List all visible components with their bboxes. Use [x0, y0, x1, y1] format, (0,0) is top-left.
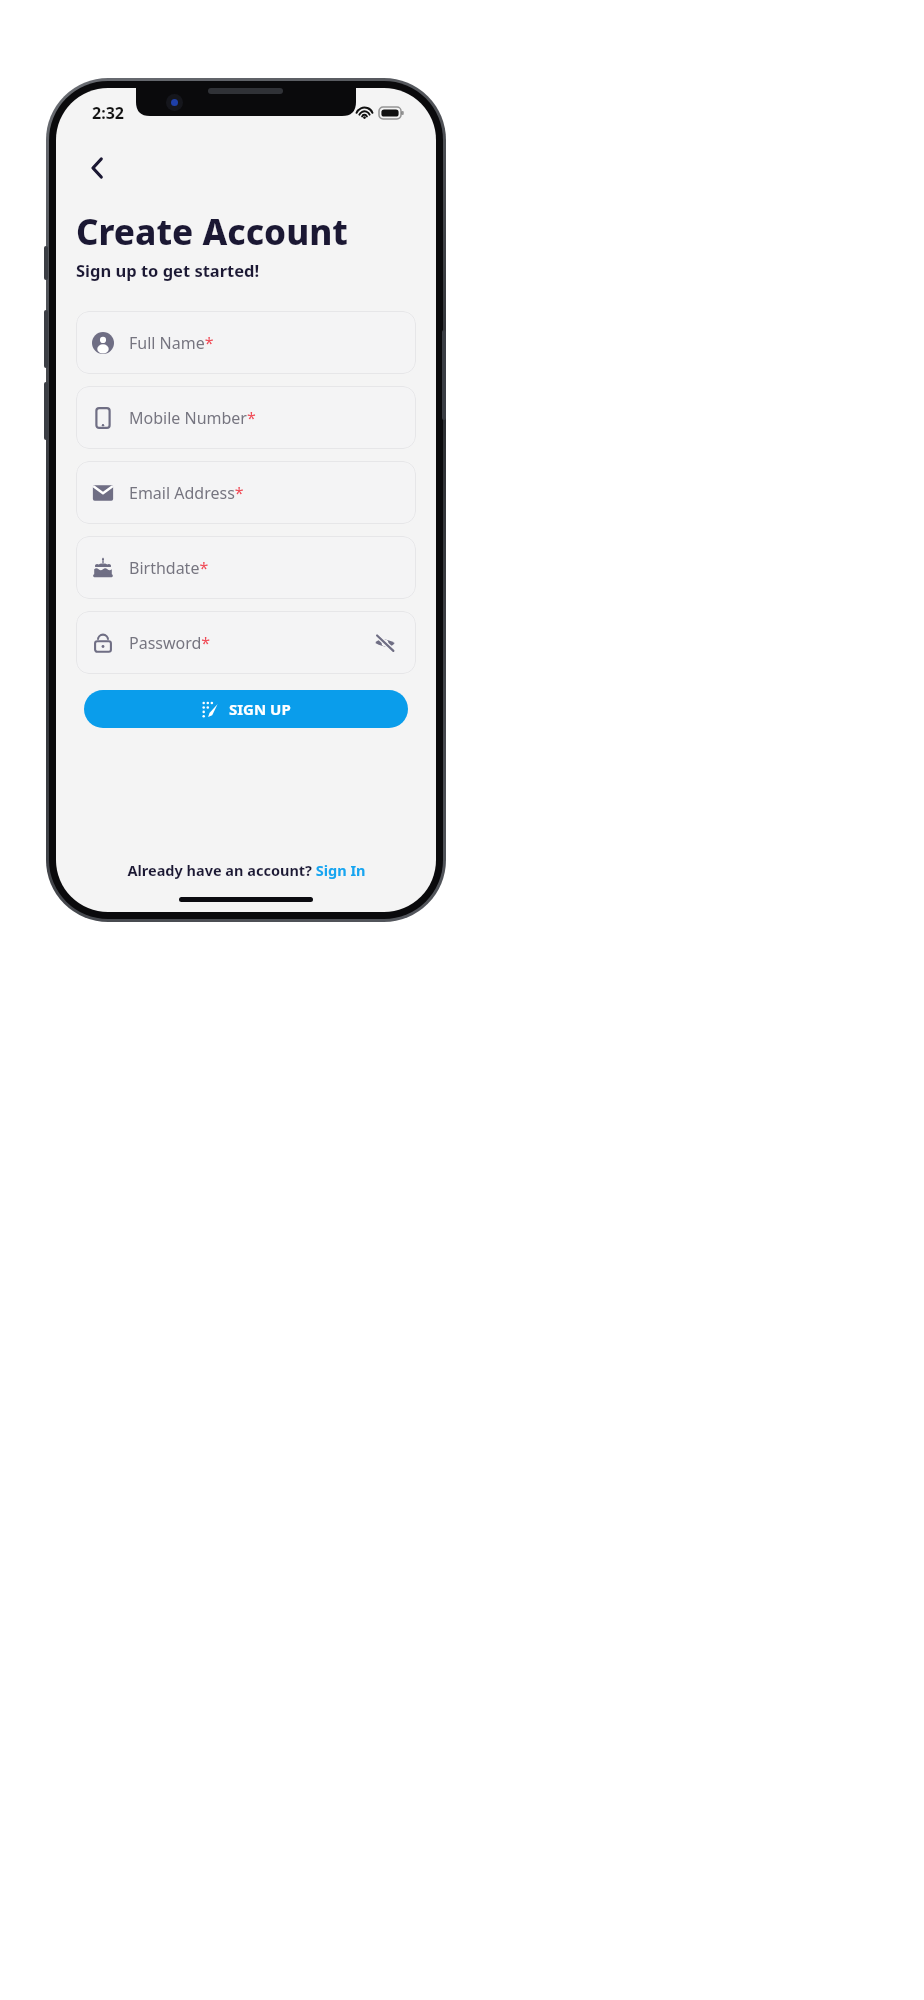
staticText: SIGN UP	[229, 699, 291, 719]
staticText: Full Name*	[129, 332, 214, 354]
button[interactable]: Email Address*	[76, 461, 416, 524]
staticText: Email Address*	[129, 482, 244, 504]
button[interactable]: Already have an account? Sign In	[56, 860, 436, 880]
staticText: Mobile Number*	[129, 407, 256, 429]
button[interactable]: Birthdate*	[76, 536, 416, 599]
staticText: 2:32	[92, 102, 124, 124]
button[interactable]: Mobile Number*	[76, 386, 416, 449]
staticText: Sign up to get started!	[76, 259, 260, 281]
staticText: Create Account	[76, 208, 348, 256]
button[interactable]: SIGN UP	[84, 690, 408, 728]
staticText: Password*	[129, 632, 211, 654]
button[interactable]: Toggle password visibility	[370, 628, 400, 658]
button[interactable]: Back	[76, 146, 120, 190]
staticText: Already have an account? Sign In	[127, 860, 366, 880]
button[interactable]: Full Name*	[76, 311, 416, 374]
button[interactable]: Password*	[76, 611, 416, 674]
staticText: Birthdate*	[129, 557, 209, 579]
